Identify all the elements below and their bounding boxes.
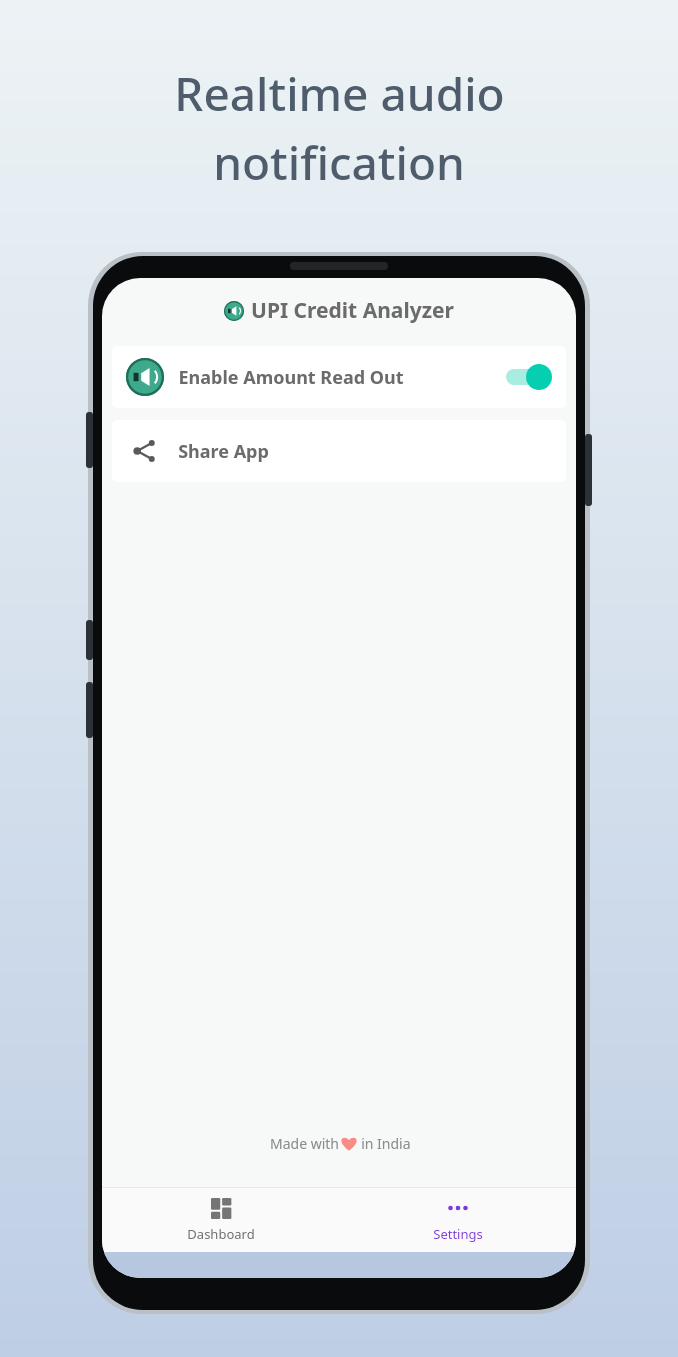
button[interactable]: Enable Amount Read Out toggle (506, 364, 552, 390)
staticText: Enable Amount Read Out (178, 365, 404, 390)
staticText: notification (213, 131, 465, 194)
staticText: in India (357, 1134, 411, 1153)
button[interactable]: Dashboard (102, 1188, 339, 1252)
staticText: Made with (268, 1134, 341, 1153)
staticText: Share App (178, 439, 269, 464)
staticText: UPI Credit Analyzer (251, 296, 454, 325)
button[interactable]: Enable Amount Read Out (112, 346, 566, 408)
staticText: Realtime audio (174, 62, 505, 125)
button[interactable]: Share App (112, 420, 566, 482)
staticText: Dashboard (187, 1225, 255, 1243)
button[interactable]: Settings (339, 1188, 576, 1252)
staticText: Settings (433, 1225, 483, 1243)
